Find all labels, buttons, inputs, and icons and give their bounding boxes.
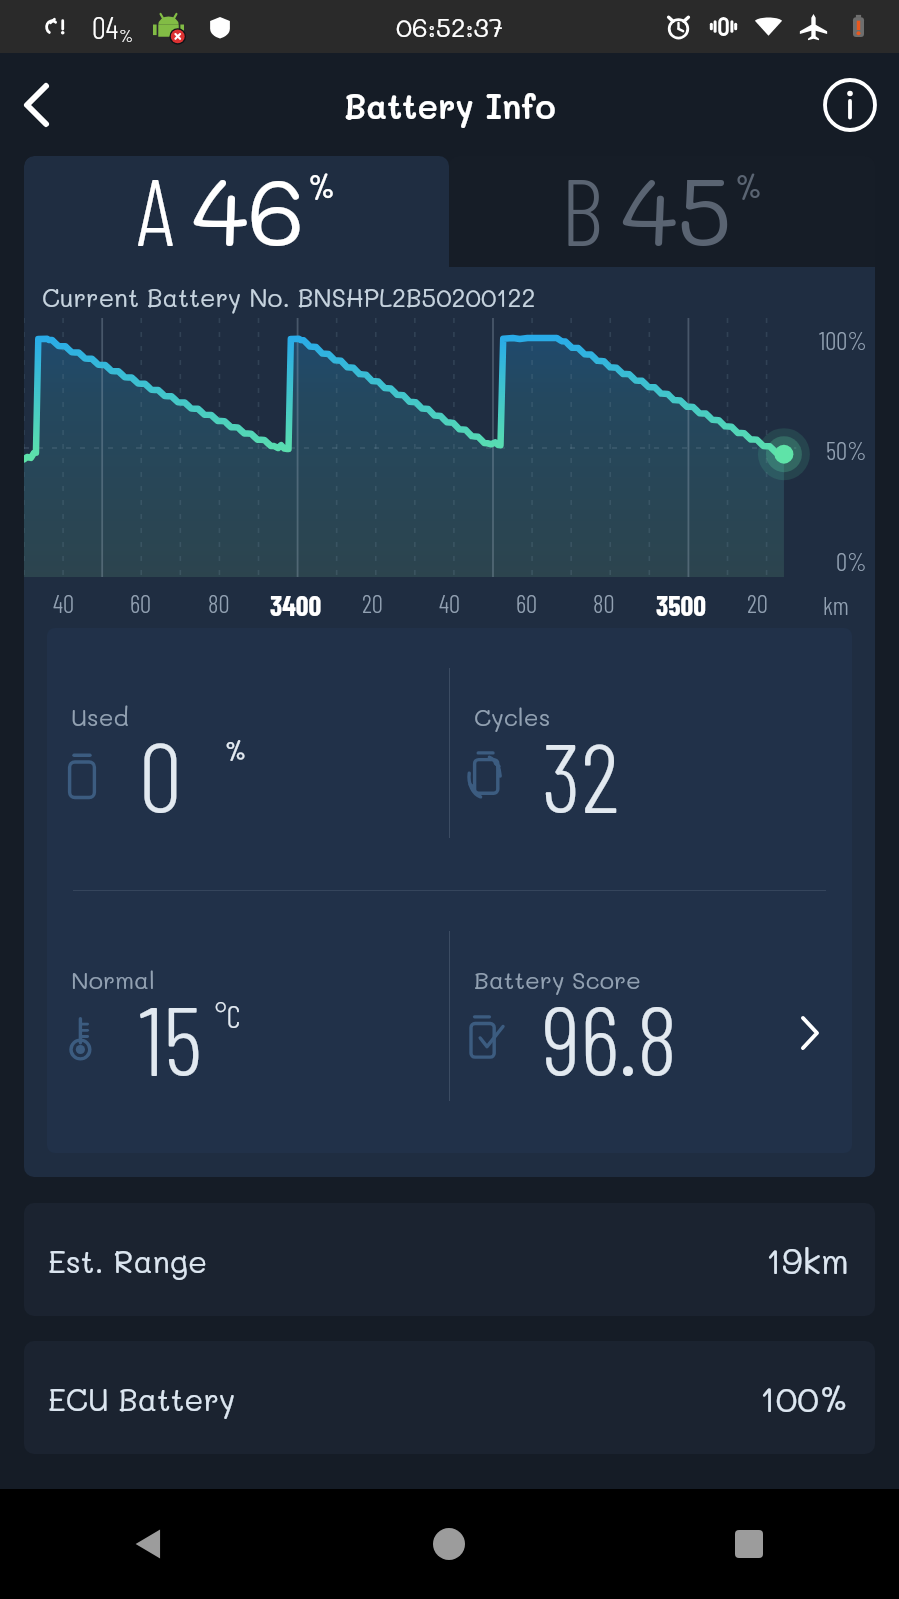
button[interactable]: Est. Range (24, 1203, 875, 1316)
button[interactable]: B (449, 156, 875, 267)
staticText: 46 (192, 156, 306, 257)
button[interactable]: Back (7, 76, 65, 134)
staticText: km (823, 590, 849, 620)
staticText: 15 (139, 979, 203, 1095)
button[interactable]: ECU Battery (24, 1341, 875, 1454)
staticText: Used (71, 701, 129, 732)
staticText: A (137, 156, 174, 263)
staticText: Battery Info (344, 83, 556, 127)
staticText: 40 (439, 588, 460, 618)
button[interactable]: Back (0, 1489, 299, 1599)
staticText: 06:52:37 (396, 10, 504, 44)
staticText: ECU Battery (48, 1378, 236, 1418)
staticText: B (561, 156, 603, 263)
staticText: % (119, 24, 134, 46)
staticText: 100% (760, 1375, 849, 1421)
button[interactable]: Information (821, 76, 879, 134)
staticText: Est. Range (48, 1240, 208, 1280)
button[interactable]: Battery score details (786, 1009, 834, 1057)
staticText: 45 (621, 156, 733, 257)
staticText: Battery Score (474, 964, 641, 995)
staticText: 0 (139, 716, 182, 832)
staticText: % (734, 164, 764, 208)
staticText: % (307, 164, 337, 208)
button[interactable]: Recent apps (599, 1489, 899, 1599)
staticText: 40 (53, 588, 74, 618)
staticText: 04 (92, 8, 119, 45)
staticText: 19km (766, 1237, 849, 1283)
staticText: 32 (542, 716, 619, 832)
staticText: 20 (362, 588, 383, 618)
staticText: 96.8 (542, 979, 678, 1095)
staticText: Current Battery No. BNSHPL2B50200122 (42, 281, 536, 313)
staticText: 80 (593, 588, 615, 618)
staticText: °C (215, 996, 241, 1034)
staticText: 20 (747, 588, 768, 618)
staticText: 50% (826, 435, 867, 465)
staticText: 60 (130, 588, 152, 618)
staticText: 3400 (270, 588, 322, 622)
staticText: % (224, 733, 248, 768)
button[interactable]: A (24, 156, 449, 267)
staticText: 80 (208, 588, 230, 618)
staticText: 100% (819, 325, 867, 355)
staticText: 0% (836, 546, 867, 576)
staticText: 60 (516, 588, 538, 618)
staticText: Cycles (474, 701, 551, 732)
button[interactable]: Home (299, 1489, 599, 1599)
staticText: 3500 (656, 588, 706, 622)
staticText: Normal (71, 964, 156, 995)
